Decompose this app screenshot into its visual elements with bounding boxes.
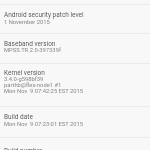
staticText: Build date xyxy=(4,113,33,121)
staticText: Android security patch level xyxy=(4,11,84,19)
staticText: parthb@flex-node1 #1 xyxy=(4,82,62,89)
button[interactable]: Android security patch level xyxy=(0,5,150,33)
button[interactable]: Build date xyxy=(0,107,150,137)
button[interactable]: Build number xyxy=(0,138,150,150)
button[interactable]: Kernel version xyxy=(0,64,150,106)
staticText: 3.4.0-g598bf39 xyxy=(4,76,44,83)
button[interactable]: Baseband version xyxy=(0,34,150,63)
staticText: Mon Nov 9 07:23:01 EST 2015 xyxy=(4,121,84,128)
staticText: Mon Nov 9 07:42:25 EST 2015 xyxy=(4,88,84,95)
staticText: Build number xyxy=(4,147,43,150)
staticText: Kernel version xyxy=(4,69,45,77)
staticText: 1 November 2015 xyxy=(4,19,50,26)
staticText: MPSS.TR.2.0-397339f xyxy=(4,47,61,54)
staticText: Baseband version xyxy=(4,40,56,48)
